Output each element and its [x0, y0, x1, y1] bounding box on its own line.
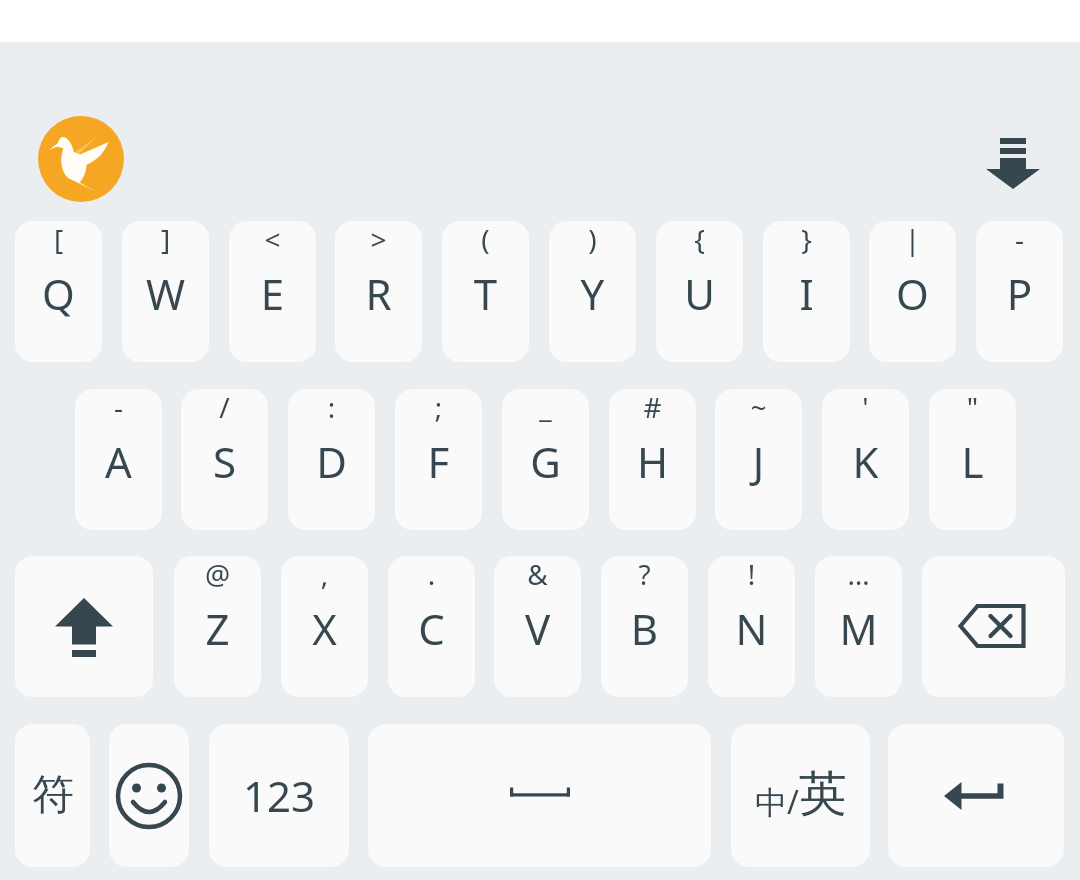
button[interactable]: -	[75, 389, 162, 530]
staticText: -	[976, 221, 1063, 258]
staticText: X	[281, 600, 368, 657]
staticText: &	[494, 556, 581, 593]
button[interactable]: ;	[395, 389, 482, 530]
button[interactable]: <	[229, 221, 316, 362]
staticText: O	[869, 265, 956, 322]
button[interactable]: Space	[368, 724, 711, 867]
button[interactable]: (	[442, 221, 529, 362]
button[interactable]: :	[288, 389, 375, 530]
staticText: @	[174, 556, 261, 593]
staticText: W	[122, 265, 209, 322]
staticText: ;	[395, 389, 482, 426]
staticText: Y	[549, 265, 636, 322]
staticText: 123	[243, 767, 316, 824]
staticText: P	[976, 265, 1063, 322]
staticText: S	[181, 433, 268, 490]
staticText: D	[288, 433, 375, 490]
staticText: K	[822, 433, 909, 490]
staticText: C	[388, 600, 475, 657]
button[interactable]: ,	[281, 556, 368, 697]
staticText: I	[763, 265, 850, 322]
staticText: )	[549, 221, 636, 258]
staticText: H	[609, 433, 696, 490]
staticText: !	[708, 556, 795, 593]
staticText: …	[815, 556, 902, 593]
staticText: V	[494, 600, 581, 657]
staticText: R	[335, 265, 422, 322]
button[interactable]: Symbols	[15, 724, 90, 867]
staticText: :	[288, 389, 375, 426]
staticText: Q	[15, 265, 102, 322]
staticText: 中/	[755, 780, 799, 824]
button[interactable]: ]	[122, 221, 209, 362]
staticText: '	[822, 389, 909, 426]
button[interactable]: App logo	[38, 116, 124, 202]
staticText: [	[15, 221, 102, 258]
button[interactable]: -	[976, 221, 1063, 362]
staticText: "	[929, 389, 1016, 426]
button[interactable]: Numbers	[209, 724, 349, 867]
button[interactable]: {	[656, 221, 743, 362]
staticText: <	[229, 221, 316, 258]
button[interactable]: Backspace	[922, 556, 1065, 697]
staticText: U	[656, 265, 743, 322]
staticText: (	[442, 221, 529, 258]
button[interactable]: #	[609, 389, 696, 530]
staticText: 英	[799, 764, 847, 824]
staticText: }	[763, 221, 850, 258]
button[interactable]: @	[174, 556, 261, 697]
staticText: M	[815, 600, 902, 657]
button[interactable]: Enter	[888, 724, 1064, 867]
button[interactable]: _	[502, 389, 589, 530]
staticText: _	[502, 389, 589, 426]
staticText: E	[229, 265, 316, 322]
button[interactable]: }	[763, 221, 850, 362]
button[interactable]: Chinese English toggle	[731, 724, 870, 867]
button[interactable]: >	[335, 221, 422, 362]
staticText: G	[502, 433, 589, 490]
staticText: B	[601, 600, 688, 657]
staticText: Z	[174, 600, 261, 657]
staticText: ,	[281, 556, 368, 593]
staticText: N	[708, 600, 795, 657]
button[interactable]: /	[181, 389, 268, 530]
staticText: /	[181, 389, 268, 426]
staticText: F	[395, 433, 482, 490]
button[interactable]: …	[815, 556, 902, 697]
button[interactable]: |	[869, 221, 956, 362]
button[interactable]: Emoji	[109, 724, 189, 867]
staticText: .	[388, 556, 475, 593]
staticText: |	[869, 221, 956, 258]
staticText: 符	[32, 769, 74, 822]
button[interactable]: .	[388, 556, 475, 697]
button[interactable]: "	[929, 389, 1016, 530]
staticText: T	[442, 265, 529, 322]
button[interactable]: )	[549, 221, 636, 362]
staticText: ]	[122, 221, 209, 258]
button[interactable]: [	[15, 221, 102, 362]
staticText: -	[75, 389, 162, 426]
button[interactable]: Shift	[15, 556, 153, 697]
staticText: >	[335, 221, 422, 258]
staticText: ~	[715, 389, 802, 426]
button[interactable]: '	[822, 389, 909, 530]
button[interactable]: Hide keyboard	[975, 125, 1051, 201]
button[interactable]: ~	[715, 389, 802, 530]
staticText: L	[929, 433, 1016, 490]
button[interactable]: ?	[601, 556, 688, 697]
staticText: {	[656, 221, 743, 258]
staticText: #	[609, 389, 696, 426]
button[interactable]: &	[494, 556, 581, 697]
staticText: J	[715, 433, 802, 490]
staticText: A	[75, 433, 162, 490]
staticText: ?	[601, 556, 688, 593]
button[interactable]: !	[708, 556, 795, 697]
